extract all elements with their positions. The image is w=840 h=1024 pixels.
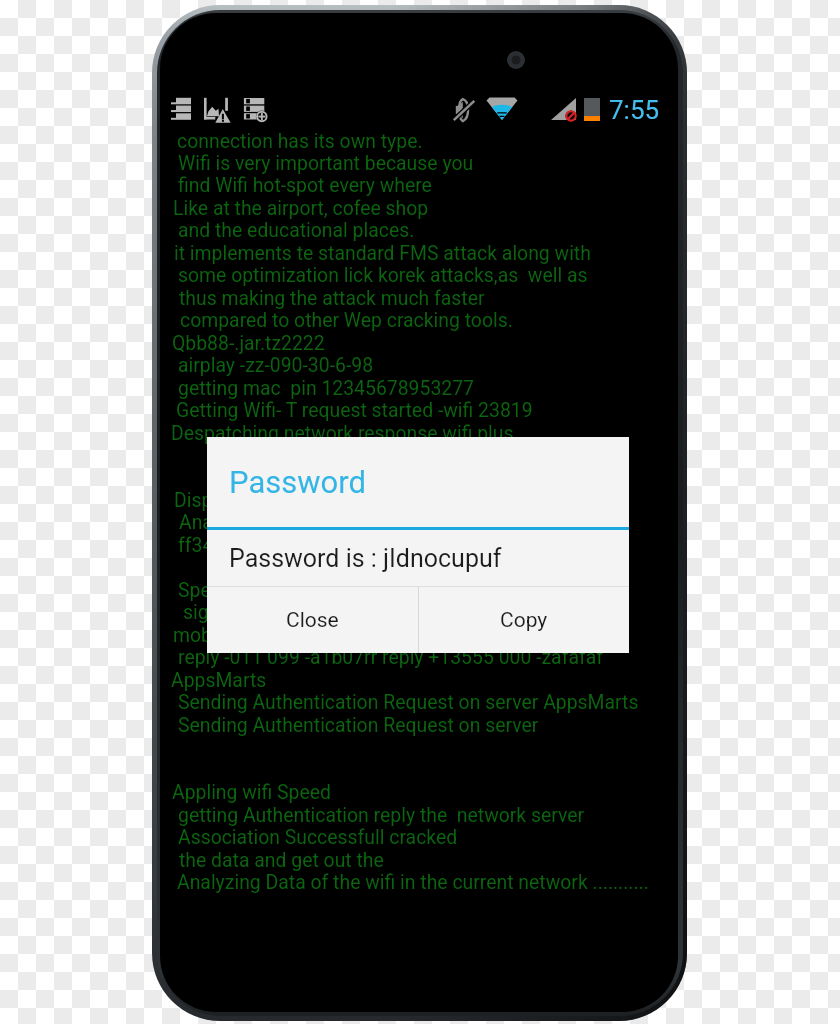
staticText: the data and get out the <box>179 849 384 872</box>
staticText: Displaying parameters of the wifi <box>174 489 456 512</box>
staticText: find Wifi hot-spot every where <box>178 174 432 197</box>
staticText: thus making the attack much faster <box>179 287 485 310</box>
staticText: Despatching network response wifi plus <box>171 422 514 445</box>
staticText: 7:55 <box>609 95 660 125</box>
staticText: connection has its own type. <box>177 130 423 153</box>
staticText: signal strength and speed of the data ov… <box>183 601 572 624</box>
button[interactable]: Ringer muted <box>450 93 480 125</box>
staticText: airplay -zz-090-30-6-98 <box>178 354 374 377</box>
staticText: Analyzing the request data form <box>179 511 455 534</box>
staticText: some optimization lick korek attacks,as … <box>178 264 588 287</box>
staticText: Specified protocol of the network <box>178 579 473 602</box>
staticText: ff34ab991 analyzed data buffer <box>178 534 449 557</box>
staticText: Analyzing Data of the wifi in the curren… <box>177 871 649 894</box>
button[interactable]: Data usage warning <box>201 93 235 125</box>
staticText: Password <box>229 464 366 500</box>
staticText: compared to other Wep cracking tools. <box>180 309 513 332</box>
staticText: Sending Authentication Request on server… <box>178 691 639 714</box>
staticText: getting mac pin 12345678953277 <box>178 377 474 400</box>
button[interactable]: No SIM card <box>548 93 580 125</box>
staticText: Sending Authentication Request on server <box>178 714 539 737</box>
staticText: it implements te standard FMS attack alo… <box>174 242 591 265</box>
staticText: and the educational places. <box>178 219 415 242</box>
button[interactable]: Notifications summary <box>171 93 199 125</box>
staticText: Like at the airport, cofee shop <box>173 197 429 220</box>
staticText: Appling wifi Speed <box>172 781 332 804</box>
staticText: Wifi is very important because you <box>178 152 474 175</box>
button[interactable]: Add to playlist <box>240 93 272 125</box>
button[interactable]: Close <box>207 587 418 653</box>
staticText: Copy <box>500 608 548 633</box>
staticText: Close <box>286 608 339 633</box>
staticText: reply -011 099 -a1b07rr reply +13555 000… <box>178 646 603 669</box>
button[interactable]: Copy <box>419 587 629 653</box>
staticText: Association Successfull cracked <box>178 826 458 849</box>
button[interactable]: Battery <box>582 93 604 125</box>
staticText: Password is : jIdnocupuf <box>229 544 502 573</box>
staticText: Qbb88-.jar.tz2222 <box>172 332 325 355</box>
staticText: getting Authentication reply the network… <box>178 804 585 827</box>
staticText: AppsMarts <box>171 669 267 692</box>
staticText: mobile -0998 -ii99 reply gateway <box>173 624 451 647</box>
button[interactable]: Wi-Fi connected <box>484 93 520 125</box>
staticText: Getting Wifi- T request started -wifi 23… <box>176 399 533 422</box>
